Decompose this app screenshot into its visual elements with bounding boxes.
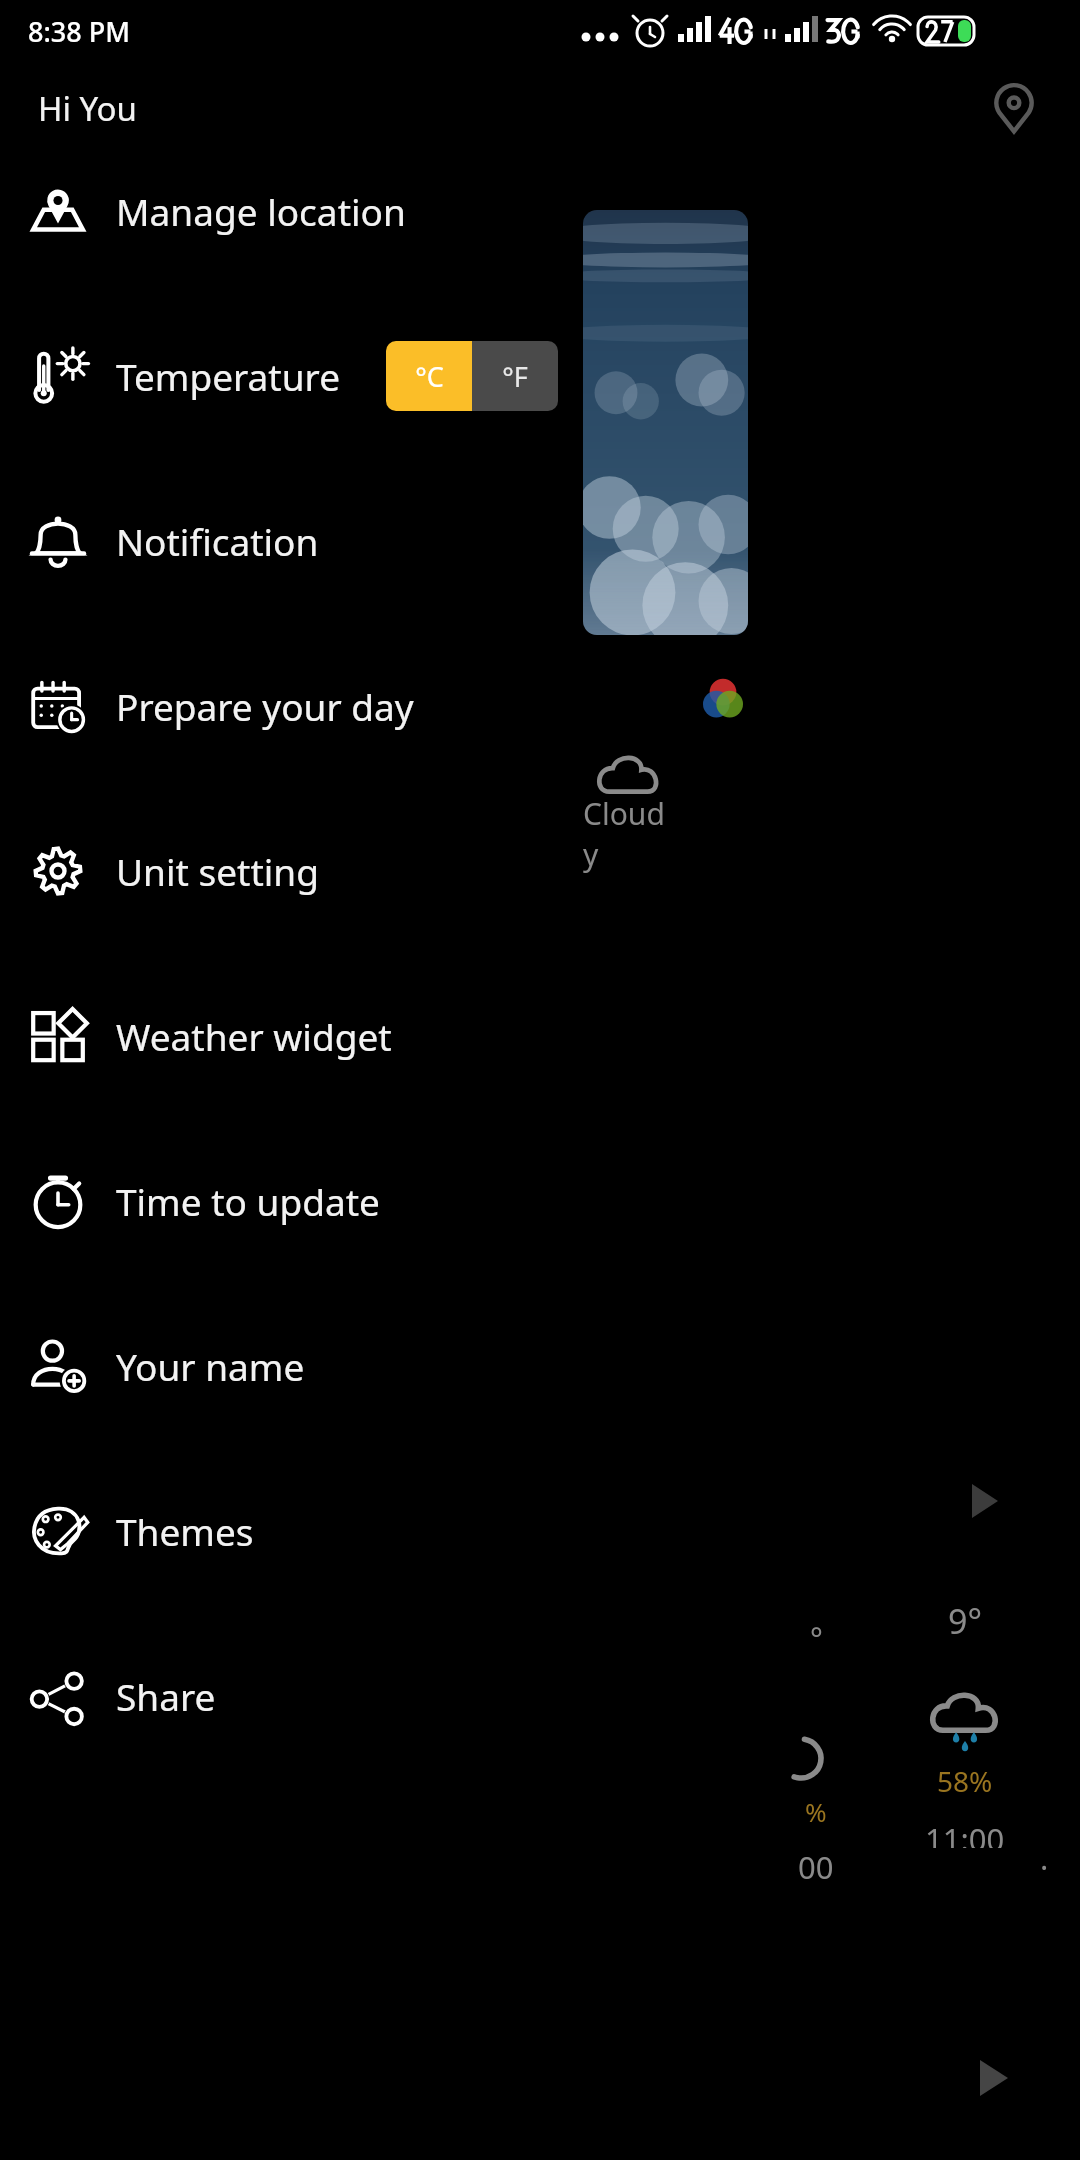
button[interactable]: Share — [0, 1613, 1080, 1778]
staticText: Temperature — [116, 351, 340, 401]
staticText: Your name — [116, 1341, 305, 1391]
staticText: Notification — [116, 516, 319, 566]
staticText: Unit setting — [116, 846, 319, 896]
button[interactable]: °F — [472, 341, 558, 411]
button[interactable]: Time to update — [0, 1118, 1080, 1283]
button[interactable]: Temperature — [0, 293, 1080, 458]
staticText: Weather widget — [116, 1011, 392, 1061]
button[interactable]: Prepare your day — [0, 623, 1080, 788]
staticText: Prepare your day — [116, 681, 414, 731]
staticText: 58% — [937, 1762, 993, 1800]
button[interactable]: Current location — [972, 66, 1056, 150]
staticText: ° — [810, 1618, 823, 1659]
button[interactable]: Manage location — [0, 128, 1080, 293]
button[interactable]: 9° — [905, 1598, 1025, 1848]
staticText: °C — [415, 358, 444, 395]
staticText: Cloudy — [583, 793, 675, 875]
staticText: 8:38 PM — [28, 13, 130, 50]
staticText: Time to update — [116, 1176, 380, 1226]
staticText: Manage location — [116, 186, 406, 236]
button[interactable]: Unit setting — [0, 788, 1080, 953]
staticText: °F — [502, 358, 528, 395]
staticText: % — [805, 1794, 827, 1829]
button[interactable]: Themes — [0, 1448, 1080, 1613]
button[interactable]: Theme colors — [700, 676, 746, 722]
staticText: Share — [116, 1671, 216, 1721]
staticText: 00 — [798, 1846, 834, 1888]
staticText: 9° — [948, 1598, 982, 1644]
button[interactable]: °C — [386, 341, 472, 411]
staticText: Hi You — [38, 86, 137, 131]
staticText: Themes — [116, 1506, 254, 1556]
staticText: 11:00 — [925, 1818, 1005, 1848]
button[interactable]: Weather widget — [0, 953, 1080, 1118]
button[interactable]: Your name — [0, 1283, 1080, 1448]
staticText: · — [1040, 1846, 1049, 1888]
button[interactable]: Notification — [0, 458, 1080, 623]
